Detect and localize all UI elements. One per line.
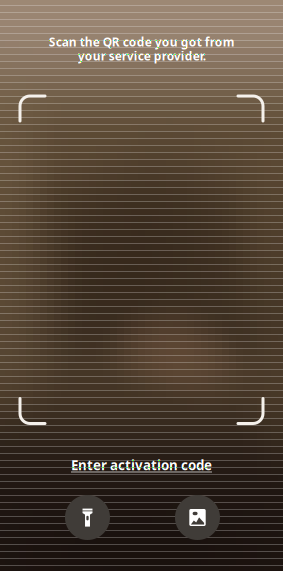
staticText: Enter activation code [71, 456, 212, 474]
staticText: your service provider. [77, 48, 205, 64]
button[interactable]: Choose photo from library [170, 490, 225, 545]
button[interactable]: Enter activation code [59, 451, 224, 479]
staticText: Scan the QR code you got from [48, 34, 234, 50]
button[interactable]: Turn on torch [60, 490, 115, 545]
